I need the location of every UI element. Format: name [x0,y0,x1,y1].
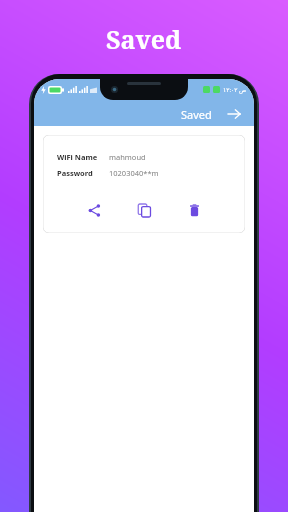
button[interactable]: Delete [181,197,207,223]
staticText: 10203040**m [109,168,159,178]
button[interactable]: WiFi Name [43,135,245,233]
button[interactable]: Saved [179,106,244,122]
staticText: WiFi Name [57,152,98,162]
staticText: Password [57,168,93,178]
staticText: Saved [181,107,212,122]
staticText: mahmoud [109,152,146,162]
staticText: Saved [106,22,182,56]
staticText: ص ١٢:٠٢ [223,86,247,94]
other: Next [226,106,242,122]
button[interactable]: Copy [131,197,157,223]
button[interactable]: Share [81,197,107,223]
